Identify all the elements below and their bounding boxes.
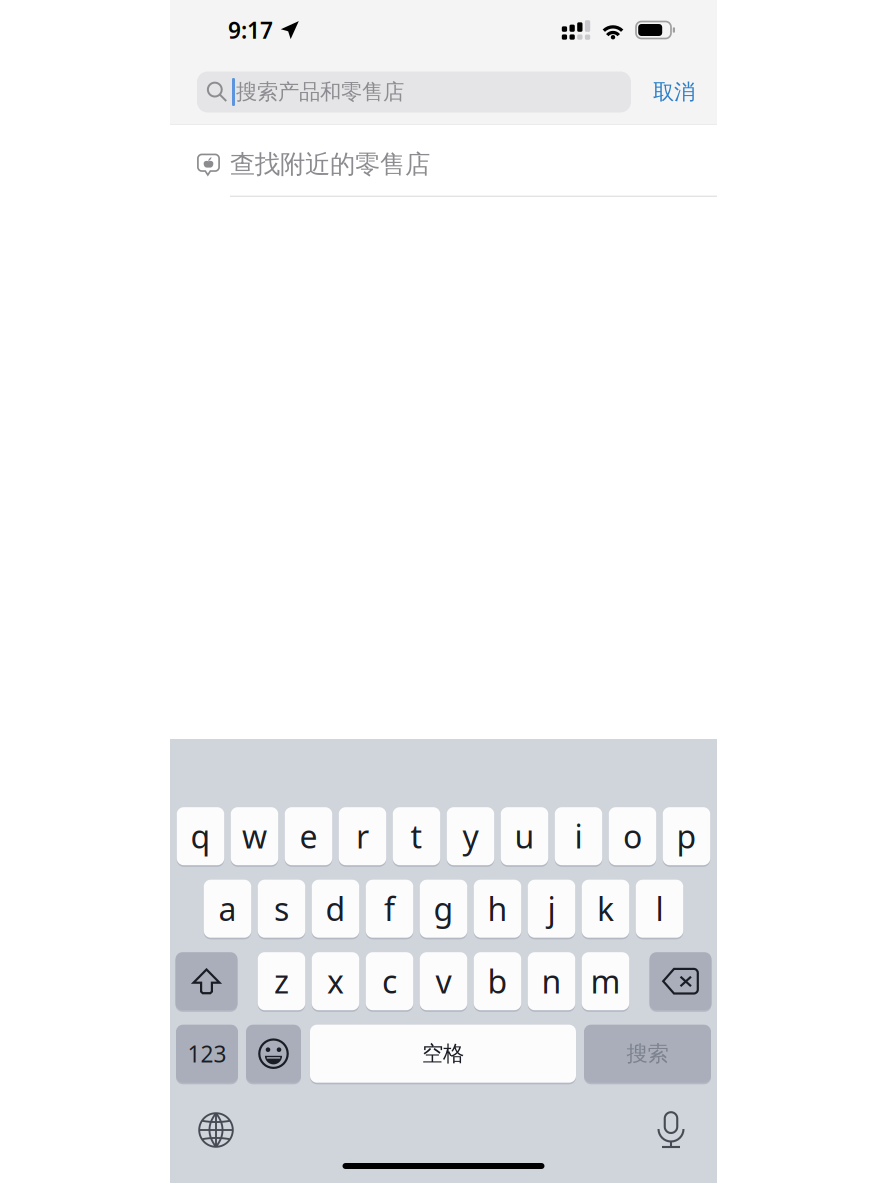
staticText: w [242,815,267,857]
button[interactable]: Delete [649,953,711,1011]
button[interactable]: u [501,808,548,866]
button[interactable]: r [339,808,386,866]
staticText: f [384,887,395,930]
staticText: 取消 [653,79,695,105]
staticText: c [382,960,397,1002]
button[interactable]: e [285,808,332,866]
button[interactable]: 查找附近的零售店 [170,125,717,197]
button[interactable]: 搜索 [584,1025,711,1083]
staticText: i [574,815,582,857]
staticText: 9:17 [228,15,273,45]
staticText: 查找附近的零售店 [230,149,430,180]
staticText: n [541,960,561,1002]
button[interactable]: g [420,880,467,938]
button[interactable]: b [474,953,521,1011]
staticText: e [299,815,317,857]
staticText: d [325,887,345,930]
button[interactable]: 取消 [631,70,717,114]
staticText: m [590,960,620,1002]
staticText: t [410,815,422,857]
staticText: u [514,815,534,857]
button[interactable]: z [258,953,305,1011]
staticText: x [327,960,344,1002]
staticText: s [274,887,289,930]
staticText: h [487,887,507,930]
staticText: y [462,815,478,857]
button[interactable]: c [366,953,413,1011]
button[interactable]: y [447,808,494,866]
button[interactable]: q [177,808,224,866]
button[interactable]: a [204,880,251,938]
button[interactable]: t [393,808,440,866]
button[interactable]: m [582,953,629,1011]
staticText: z [274,960,289,1002]
staticText: g [433,887,453,930]
staticText: 空格 [422,1041,464,1067]
staticText: 搜索产品和零售店 [236,79,404,105]
button[interactable]: 空格 [310,1025,576,1083]
button[interactable]: f [366,880,413,938]
button[interactable]: i [555,808,602,866]
button[interactable]: Emoji keyboard [246,1025,301,1083]
button[interactable]: j [528,880,575,938]
button[interactable]: Shift [175,953,237,1011]
button[interactable]: s [258,880,305,938]
button[interactable]: Dictation [641,1102,701,1158]
staticText: o [623,815,642,857]
staticText: j [547,887,555,930]
staticText: p [676,815,696,857]
staticText: b [487,960,507,1002]
staticText: 搜索 [626,1041,668,1067]
staticText: 123 [187,1039,226,1069]
staticText: a [218,887,236,930]
button[interactable]: n [528,953,575,1011]
staticText: l [655,887,663,930]
button[interactable]: Next keyboard [186,1102,246,1158]
button[interactable]: p [663,808,710,866]
button[interactable]: l [636,880,683,938]
button[interactable]: x [312,953,359,1011]
button[interactable]: h [474,880,521,938]
staticText: r [356,815,369,857]
button[interactable]: 123 [176,1025,238,1083]
staticText: v [435,960,451,1002]
staticText: q [190,815,210,857]
button[interactable]: k [582,880,629,938]
button[interactable]: w [231,808,278,866]
button[interactable]: o [609,808,656,866]
button[interactable]: v [420,953,467,1011]
staticText: k [597,887,614,930]
button[interactable]: d [312,880,359,938]
